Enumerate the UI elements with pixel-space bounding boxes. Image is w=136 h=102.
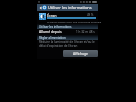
staticText: Allumé depuis bbox=[39, 29, 62, 34]
staticText: délai d'expiration de l'écran bbox=[39, 44, 78, 48]
staticText: Utiliser les informations bbox=[39, 25, 72, 29]
staticText: 1 h 32 m 48 s bbox=[76, 30, 95, 34]
button[interactable]: Affichage bbox=[63, 50, 98, 57]
staticText: 49 % bbox=[87, 13, 94, 17]
staticText: Affichage bbox=[73, 51, 88, 56]
staticText: Écran bbox=[47, 13, 57, 18]
staticText: Réduire la luminosité de l'écran et/ou l… bbox=[39, 40, 95, 44]
button[interactable]: Back bbox=[37, 4, 98, 11]
staticText: Utiliser les informations bbox=[48, 5, 92, 10]
button[interactable]: Allumé depuis bbox=[37, 29, 98, 34]
staticText: Système adapté pour une luminosité optim… bbox=[47, 20, 102, 23]
staticText: Régler alimentation bbox=[39, 36, 66, 40]
